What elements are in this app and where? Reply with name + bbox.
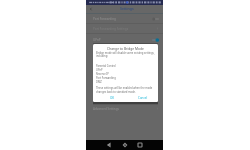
button[interactable]: Back (105, 141, 113, 149)
button[interactable]: Cancel (136, 95, 150, 101)
staticText: Parental Control UPnP Reserve IP Port Fo… (96, 64, 116, 84)
button[interactable]: Home (121, 141, 129, 149)
staticText: UPnP (93, 38, 101, 42)
staticText: Settings (120, 6, 134, 11)
button[interactable]: Recents (136, 141, 144, 149)
button[interactable]: UPnP (86, 35, 163, 44)
staticText: Port Forwarding Settings (93, 27, 129, 31)
staticText: OK (110, 96, 115, 100)
staticText: Change to Bridge Mode (95, 46, 156, 50)
button[interactable]: OK (108, 95, 117, 101)
staticText: Bridge mode will disable some existing s… (96, 51, 155, 57)
staticText: Advanced Settings (93, 107, 119, 111)
button[interactable]: Advanced Settings (86, 104, 163, 113)
staticText: Cancel (138, 96, 148, 100)
staticText: These settings will be enabled when the … (96, 86, 155, 94)
button[interactable]: Back (88, 6, 94, 12)
button[interactable]: Port Forwarding (86, 14, 163, 23)
staticText: Port Forwarding (93, 17, 116, 21)
